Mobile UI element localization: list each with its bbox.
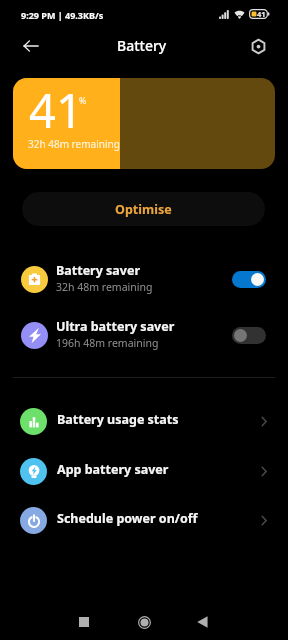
staticText: 32h 48m remaining [28, 137, 120, 151]
staticText: % [79, 94, 87, 106]
button[interactable]: On [232, 271, 266, 288]
staticText: 196h 48m remaining [56, 336, 159, 350]
staticText: Battery [117, 36, 167, 55]
button[interactable]: Back [15, 28, 47, 64]
button[interactable]: Battery saver [0, 257, 288, 301]
button[interactable]: Battery usage stats [0, 403, 288, 440]
button[interactable]: App battery saver [0, 453, 288, 490]
staticText: 41 [29, 78, 83, 142]
staticText: App battery saver [57, 461, 261, 478]
button[interactable]: Ultra battery saver [0, 313, 288, 357]
staticText: Battery saver [56, 262, 141, 279]
button[interactable]: Settings [241, 28, 275, 64]
button[interactable]: Recents [72, 610, 96, 634]
staticText: Optimise [115, 201, 172, 218]
button[interactable]: Home [132, 610, 156, 634]
button[interactable]: Schedule power on/off [0, 502, 288, 539]
staticText: 9:29 PM | 49.3KB/s [21, 9, 104, 21]
button[interactable]: 41 [13, 78, 275, 169]
button[interactable]: Optimise [22, 192, 265, 226]
staticText: Ultra battery saver [56, 318, 175, 335]
staticText: Battery usage stats [57, 411, 261, 428]
staticText: 41 [257, 9, 266, 19]
staticText: 32h 48m remaining [56, 280, 153, 294]
staticText: Schedule power on/off [57, 510, 261, 527]
button[interactable]: Off [232, 327, 266, 344]
button[interactable]: Back [190, 610, 214, 634]
